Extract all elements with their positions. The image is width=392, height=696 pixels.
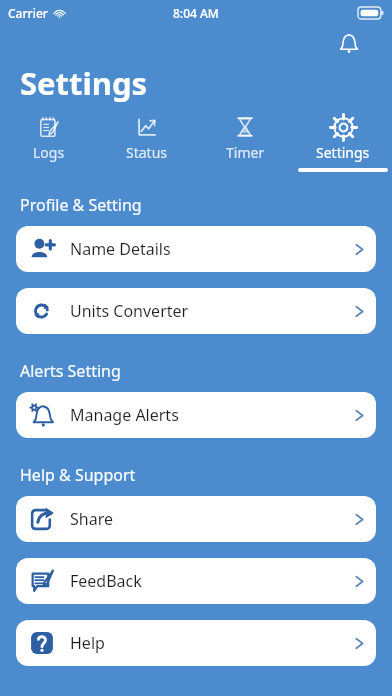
staticText: Help [70, 632, 355, 654]
staticText: Settings [316, 143, 370, 162]
staticText: Alerts Setting [20, 360, 121, 382]
staticText: Settings [20, 62, 148, 104]
button[interactable]: Logs [0, 112, 98, 172]
staticText: Logs [33, 143, 65, 162]
staticText: Units Converter [70, 300, 355, 322]
button[interactable]: Manage Alerts [16, 392, 376, 438]
button[interactable]: Notifications [334, 29, 364, 59]
staticText: Profile & Setting [20, 194, 142, 216]
button[interactable]: Units Converter [16, 288, 376, 334]
button[interactable]: Name Details [16, 226, 376, 272]
staticText: Share [70, 508, 355, 530]
button[interactable]: FeedBack [16, 558, 376, 604]
staticText: Manage Alerts [70, 404, 355, 426]
button[interactable]: Timer [196, 112, 294, 172]
staticText: Name Details [70, 238, 355, 260]
button[interactable]: Share [16, 496, 376, 542]
button[interactable]: Status [98, 112, 196, 172]
staticText: 8:04 AM [173, 5, 219, 21]
staticText: Help & Support [20, 464, 136, 486]
staticText: Status [126, 143, 168, 162]
button[interactable]: Help [16, 620, 376, 666]
staticText: Carrier [8, 5, 48, 21]
button[interactable]: Settings [294, 112, 392, 172]
staticText: Timer [226, 143, 265, 162]
staticText: FeedBack [70, 570, 355, 592]
